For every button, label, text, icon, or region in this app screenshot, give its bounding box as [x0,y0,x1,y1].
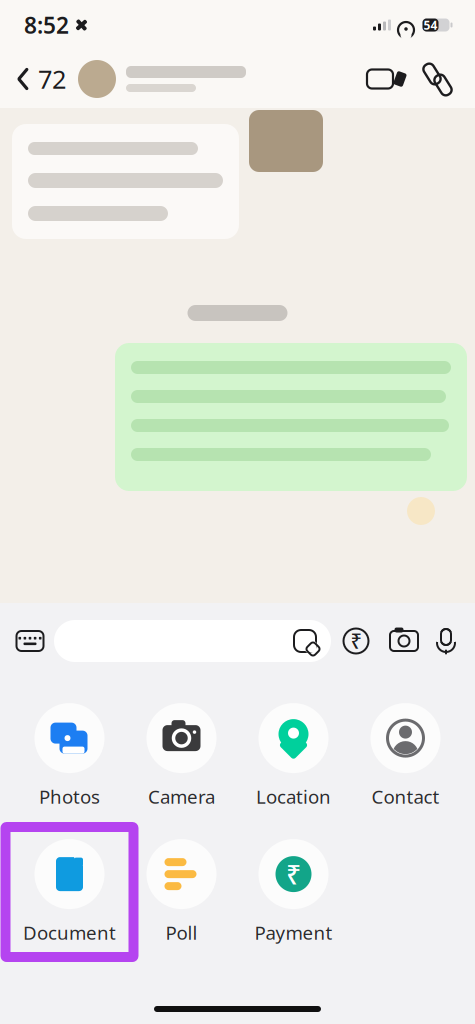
staticText: 72 [38,62,66,96]
button[interactable]: Contact [349,695,461,817]
button[interactable]: Video call [359,61,413,96]
button[interactable]: Document [13,831,125,953]
staticText: Poll [165,920,197,945]
staticText: Camera [148,784,215,809]
staticText: Payment [254,920,332,945]
button[interactable]: Location [237,695,349,817]
button[interactable]: Message field with stickers [54,620,331,662]
staticText: ₹ [350,628,361,654]
button[interactable]: ₹ [237,831,349,953]
staticText: 54 [423,17,437,33]
button[interactable]: Payments [331,627,381,655]
staticText: Photos [39,784,100,809]
staticText: Location [256,784,331,809]
button[interactable]: Poll [125,831,237,953]
button[interactable]: Camera [381,628,427,654]
button[interactable]: Voice call [413,59,461,99]
staticText: ₹ [286,856,301,892]
staticText: Document [23,920,116,945]
staticText: Contact [371,784,439,809]
button[interactable]: Keyboard [0,628,54,654]
button[interactable]: Contact info [66,60,359,98]
button[interactable]: Camera [125,695,237,817]
button[interactable]: Voice message [427,626,475,656]
staticText: 8:52 [24,10,69,40]
button[interactable]: Back, 72 unread [0,56,66,102]
button[interactable]: Photos [13,695,125,817]
